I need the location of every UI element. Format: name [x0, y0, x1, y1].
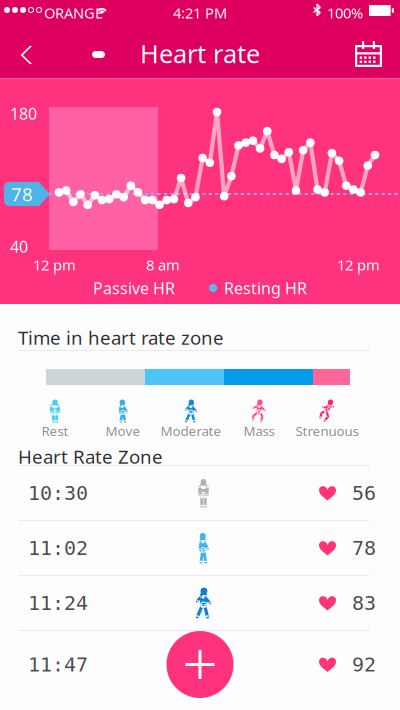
staticText: 40: [10, 236, 28, 257]
staticText: 11:47: [28, 653, 88, 676]
button[interactable]: 10:30: [0, 466, 400, 520]
staticText: 78: [352, 536, 376, 560]
staticText: Strenuous: [295, 422, 358, 440]
staticText: Passive HR: [93, 277, 175, 299]
staticText: Heart rate: [140, 37, 260, 70]
staticText: 12 pm: [33, 255, 76, 274]
staticText: 83: [352, 591, 376, 615]
staticText: Mass: [243, 422, 274, 440]
staticText: 4:21 PM: [173, 3, 227, 22]
button[interactable]: Add: [166, 631, 233, 698]
staticText: ORANGE: [44, 3, 103, 22]
staticText: 78: [11, 182, 33, 206]
button[interactable]: 11:47: [0, 637, 400, 691]
button[interactable]: Status: [0, 20, 119, 79]
staticText: 92: [352, 653, 376, 676]
staticText: 100%: [327, 3, 363, 22]
staticText: 8 am: [146, 255, 180, 274]
staticText: Rest: [41, 422, 68, 440]
staticText: Heart Rate Zone: [18, 444, 163, 469]
staticText: Move: [105, 422, 140, 440]
staticText: 180: [10, 103, 37, 124]
staticText: 11:02: [28, 536, 88, 560]
staticText: 12 pm: [337, 255, 380, 274]
staticText: 11:24: [28, 591, 88, 615]
button[interactable]: Back: [0, 20, 46, 79]
button[interactable]: 11:02: [0, 521, 400, 575]
staticText: Moderate: [160, 422, 221, 440]
staticText: 56: [352, 481, 376, 505]
button[interactable]: Calendar: [341, 20, 400, 79]
button[interactable]: 11:24: [0, 576, 400, 630]
staticText: Time in heart rate zone: [18, 325, 224, 350]
staticText: 10:30: [28, 481, 88, 505]
staticText: Resting HR: [224, 277, 307, 299]
